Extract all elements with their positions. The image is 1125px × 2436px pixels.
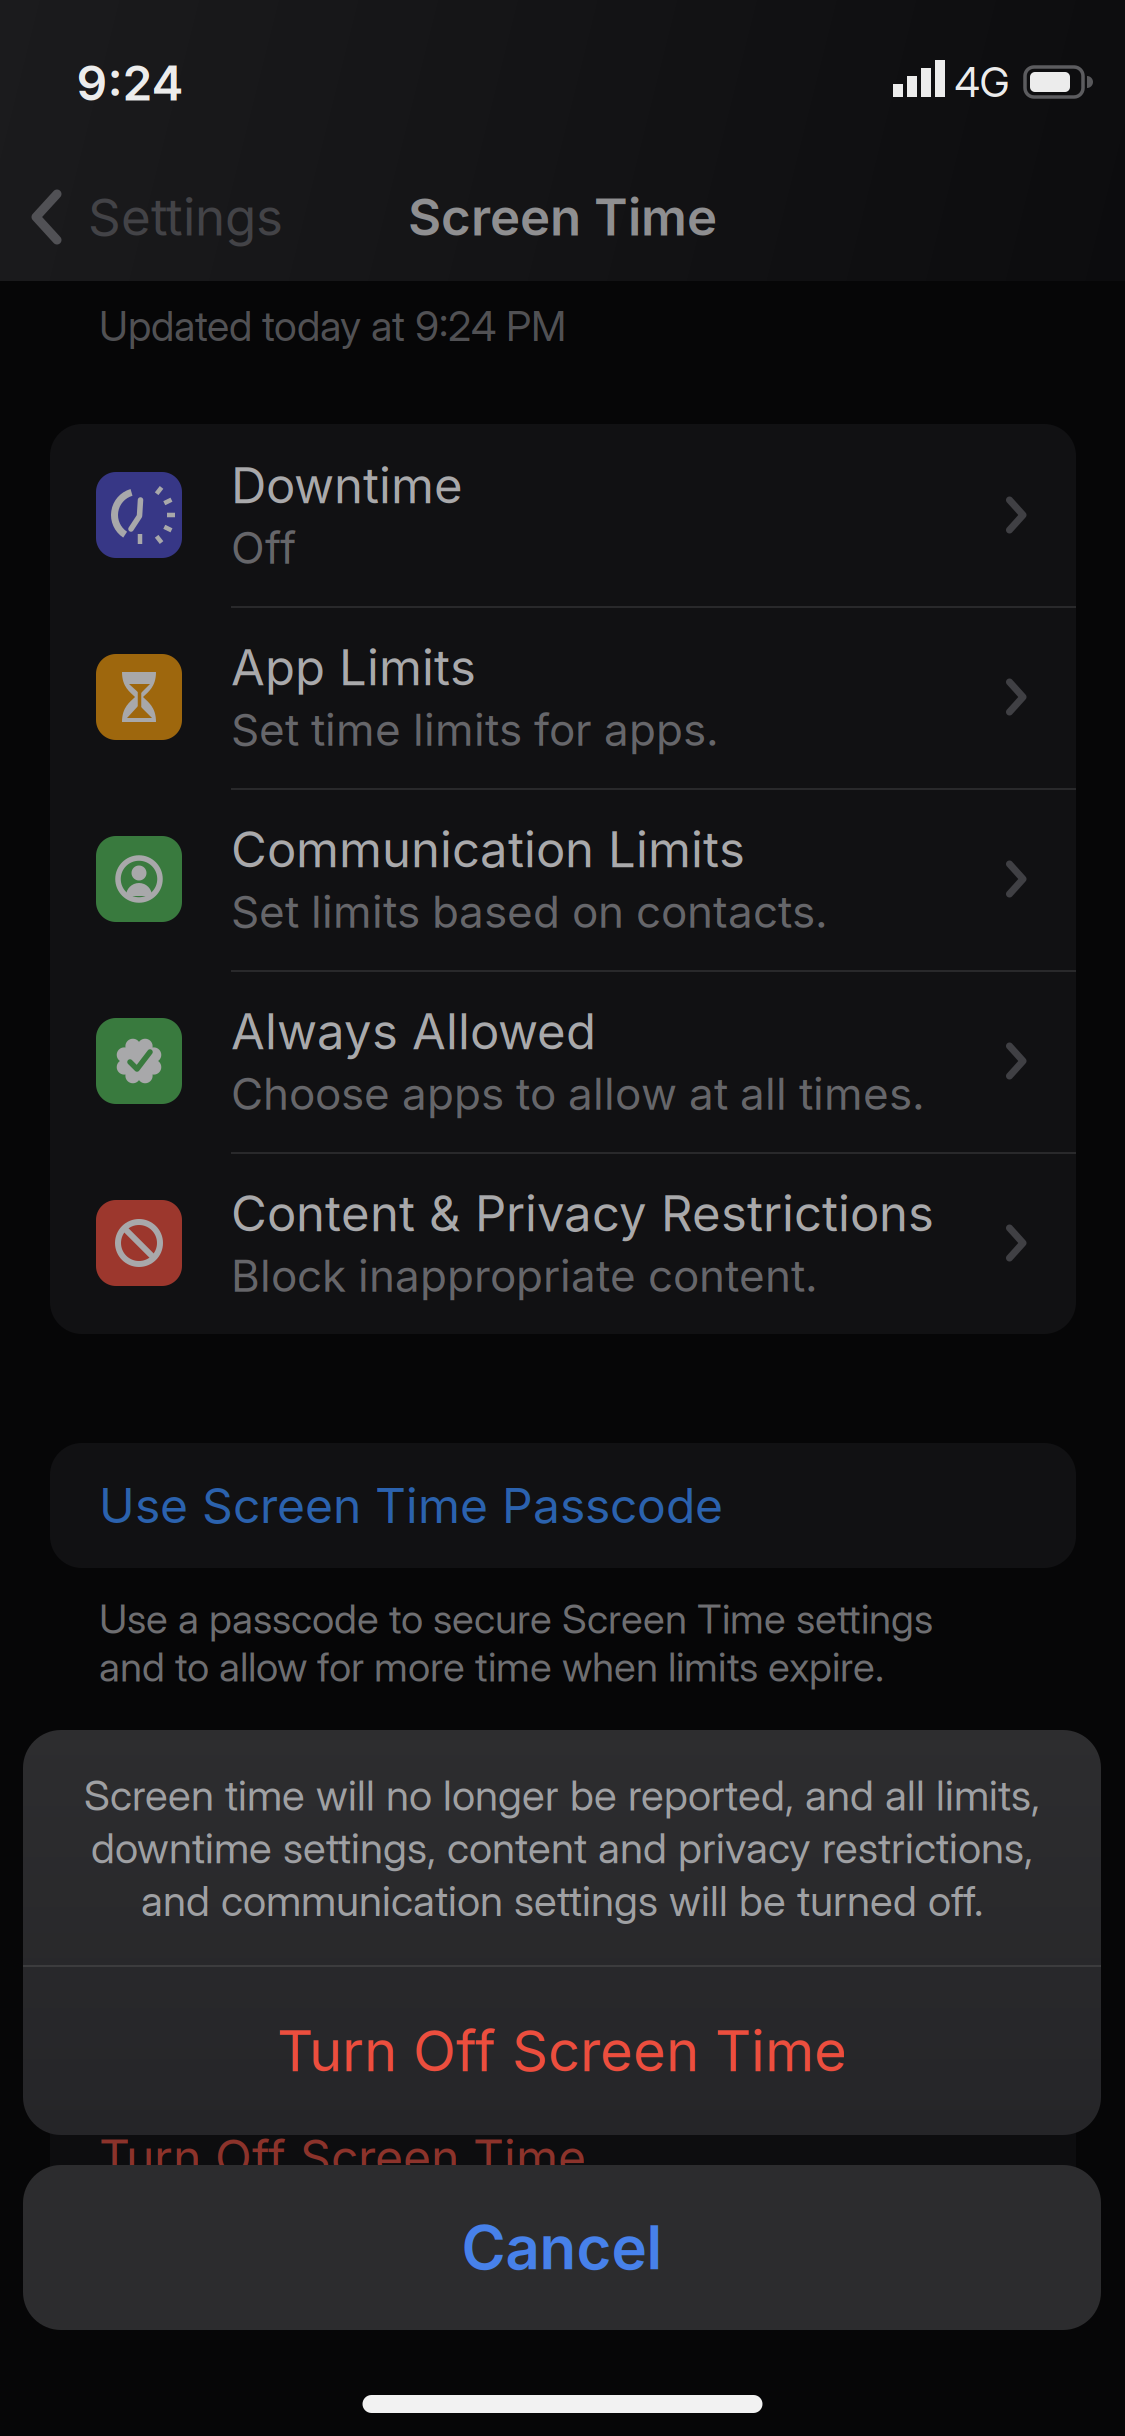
staticText: Communication Limits — [231, 820, 745, 879]
button[interactable]: Use Screen Time Passcode — [50, 1443, 1076, 1568]
staticText: Block inappropriate content. — [231, 1249, 818, 1302]
staticText: Cancel — [461, 2211, 662, 2284]
staticText: Content & Privacy Restrictions — [231, 1184, 934, 1243]
staticText: Turn Off Screen Time — [277, 2017, 847, 2085]
button[interactable]: Cancel — [23, 2165, 1101, 2330]
staticText: Settings — [88, 186, 283, 248]
button[interactable]: Settings — [30, 167, 430, 267]
button[interactable]: Content & Privacy Restrictions — [50, 1152, 1076, 1334]
staticText: Set limits based on contacts. — [231, 885, 828, 938]
staticText: App Limits — [231, 638, 476, 697]
button[interactable]: Turn Off Screen Time — [50, 2092, 1076, 2222]
staticText: 4G — [954, 57, 1009, 107]
button[interactable]: Downtime — [50, 424, 1076, 606]
staticText: and to allow for more time when limits e… — [99, 1643, 884, 1691]
button[interactable]: Communication Limits — [50, 788, 1076, 970]
staticText: Always Allowed — [231, 1002, 596, 1061]
staticText: 9:24 — [76, 54, 183, 112]
staticText: Downtime — [231, 456, 463, 515]
staticText: downtime settings, content and privacy r… — [91, 1823, 1033, 1873]
staticText: Screen time will no longer be reported, … — [84, 1770, 1040, 1821]
staticText: Updated today at 9:24 PM — [99, 301, 566, 351]
staticText: Choose apps to allow at all times. — [231, 1067, 925, 1120]
button[interactable]: App Limits — [50, 606, 1076, 788]
button[interactable]: Always Allowed — [50, 970, 1076, 1152]
staticText: Use a passcode to secure Screen Time set… — [99, 1595, 933, 1643]
staticText: Set time limits for apps. — [231, 703, 719, 756]
staticText: Screen Time — [408, 186, 717, 248]
staticText: Off — [231, 521, 296, 574]
staticText: Use Screen Time Passcode — [99, 1476, 723, 1535]
staticText: and communication settings will be turne… — [141, 1875, 983, 1926]
staticText: Turn Off Screen Time — [99, 2128, 586, 2186]
button[interactable]: Turn Off Screen Time — [23, 1967, 1101, 2135]
